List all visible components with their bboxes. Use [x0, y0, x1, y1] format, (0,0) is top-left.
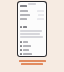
button[interactable]: Setting two [18, 13, 46, 17]
button[interactable]: Content card three [20, 36, 44, 38]
button[interactable]: Content card two [20, 33, 44, 35]
button[interactable]: Item C [18, 48, 46, 52]
button[interactable]: Setting three [18, 17, 46, 21]
button[interactable]: Setting one [18, 9, 46, 13]
button[interactable]: Screen title [20, 5, 44, 7]
button[interactable]: Content card one [20, 30, 44, 32]
button[interactable]: Item D [18, 52, 46, 56]
button[interactable]: Item A [18, 40, 46, 44]
button[interactable]: Section header [18, 25, 46, 29]
button[interactable]: Item B [18, 44, 46, 48]
